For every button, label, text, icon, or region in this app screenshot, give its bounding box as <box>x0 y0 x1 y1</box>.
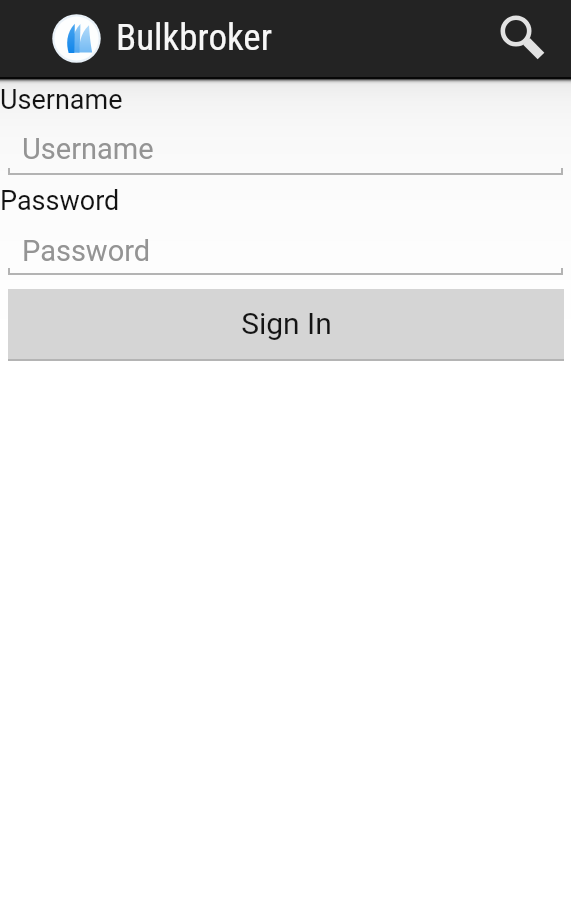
button[interactable]: Bulkbroker <box>0 0 290 77</box>
button[interactable]: Username <box>0 132 571 175</box>
staticText: Username <box>22 132 154 166</box>
staticText: Username <box>0 84 123 116</box>
staticText: Password <box>22 234 151 268</box>
staticText: Bulkbroker <box>116 16 272 59</box>
button[interactable]: Password <box>0 234 571 275</box>
staticText: Sign In <box>241 306 332 341</box>
staticText: Password <box>0 185 120 217</box>
button[interactable]: Sign In <box>8 289 564 359</box>
button[interactable]: Search <box>494 0 571 77</box>
